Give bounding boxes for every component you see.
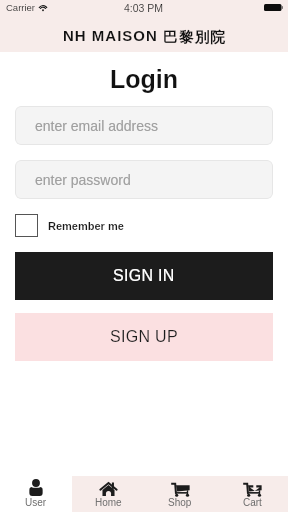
staticText: Remember me	[48, 220, 124, 232]
button[interactable]: Shop	[144, 476, 216, 512]
button[interactable]: Remember me	[15, 214, 288, 237]
staticText: NH MAISON 巴黎別院	[63, 27, 226, 46]
staticText: Carrier	[6, 2, 36, 13]
staticText: Login	[0, 65, 288, 93]
staticText: 4:03 PM	[124, 2, 164, 14]
button[interactable]: Home	[72, 476, 144, 512]
staticText: Cart	[243, 497, 262, 508]
staticText: User	[25, 497, 47, 508]
button[interactable]: SIGN IN	[15, 252, 273, 300]
button[interactable]: Cart	[216, 476, 288, 512]
staticText: SIGN IN	[113, 267, 175, 285]
staticText: enter email address	[35, 118, 158, 134]
button[interactable]: User	[0, 476, 72, 512]
button[interactable]: enter email address	[15, 106, 273, 145]
button[interactable]: enter password	[15, 160, 273, 199]
staticText: enter password	[35, 172, 131, 188]
staticText: Shop	[168, 497, 192, 508]
staticText: Home	[95, 497, 122, 508]
staticText: SIGN UP	[110, 328, 178, 346]
button[interactable]: SIGN UP	[15, 313, 273, 361]
